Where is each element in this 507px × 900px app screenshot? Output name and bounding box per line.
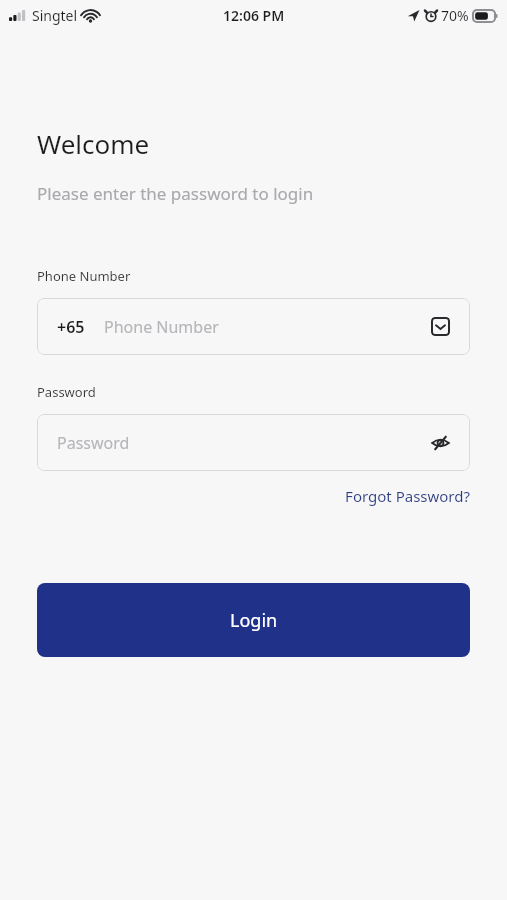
staticText: Login [230,608,278,633]
staticText: 70% [441,6,469,25]
staticText: Phone Number [104,316,219,338]
button[interactable]: Login [37,583,470,657]
button[interactable]: +65 [37,298,470,355]
staticText: Password [37,383,96,401]
staticText: +65 [57,316,85,338]
button[interactable]: Show password [428,431,452,455]
button[interactable]: Select country code [431,317,450,336]
staticText: 12:06 PM [223,6,285,25]
staticText: Phone Number [37,267,131,285]
button[interactable]: Password [37,414,470,471]
staticText: Please enter the password to login [37,182,314,205]
staticText: Welcome [37,126,150,161]
staticText: Password [57,432,130,454]
staticText: Singtel [32,6,78,25]
button[interactable]: Forgot Password? [345,483,470,509]
